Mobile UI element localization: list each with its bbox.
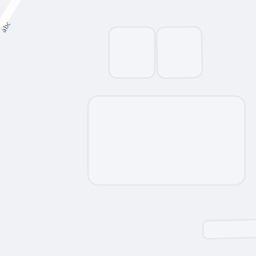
button[interactable]: Tile one — [109, 27, 155, 78]
button[interactable]: Tile two — [157, 27, 202, 78]
button[interactable]: Bottom bar — [203, 220, 256, 238]
